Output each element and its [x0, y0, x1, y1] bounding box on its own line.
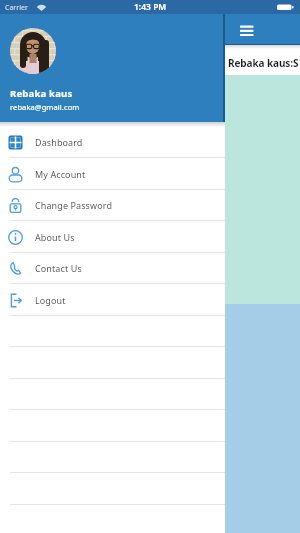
- staticText: About Us: [35, 231, 75, 243]
- button[interactable]: My Account: [0, 158, 225, 190]
- staticText: My Account: [35, 168, 86, 180]
- button[interactable]: [0, 45, 300, 75]
- button[interactable]: Contact Us: [0, 252, 225, 284]
- button[interactable]: Logout: [0, 284, 225, 316]
- button[interactable]: [238, 23, 256, 39]
- staticText: Change Password: [35, 199, 113, 211]
- button[interactable]: Dashboard: [0, 126, 225, 158]
- staticText: Dashboard: [35, 136, 83, 148]
- staticText: rebaka@gmail.com: [10, 102, 80, 112]
- staticText: Rebaka kaus:S: [228, 56, 299, 70]
- button[interactable]: [10, 28, 56, 74]
- staticText: Rebaka kaus: [10, 87, 73, 100]
- button[interactable]: About Us: [0, 221, 225, 253]
- button[interactable]: Change Password: [0, 189, 225, 221]
- staticText: 1:43 PM: [134, 1, 167, 13]
- staticText: Contact Us: [35, 262, 82, 274]
- staticText: Carrier: [5, 3, 28, 13]
- staticText: Logout: [35, 294, 66, 306]
